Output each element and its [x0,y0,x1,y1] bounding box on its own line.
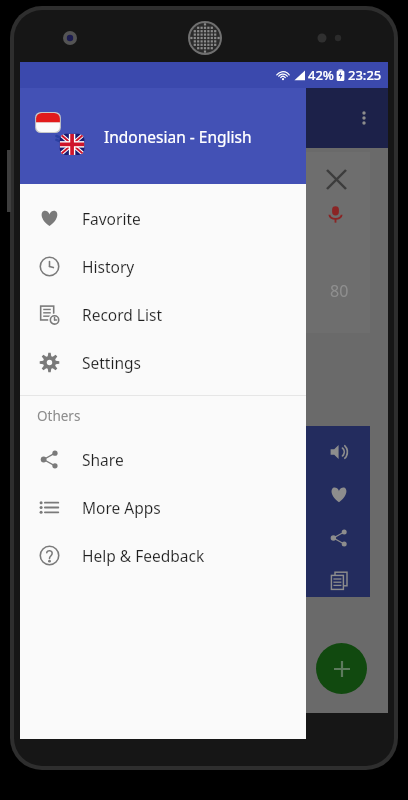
staticText: 23:25 [348,66,382,84]
button[interactable]: Settings [20,338,306,386]
staticText: 42% [308,66,334,84]
button[interactable]: Copy [323,565,355,597]
button[interactable]: Clear [321,164,351,194]
button[interactable]: Help & Feedback [20,531,306,579]
button[interactable]: Share [20,435,306,483]
staticText: Settings [82,352,141,373]
button[interactable]: Voice input [321,200,349,228]
button[interactable]: Favorite [323,479,355,511]
button[interactable]: Speak [323,436,355,468]
button[interactable]: History [20,242,306,290]
button[interactable]: Share [323,522,355,554]
staticText: Others [37,407,81,425]
staticText: More Apps [82,497,161,518]
staticText: 80 [330,280,349,302]
staticText: History [82,256,135,277]
staticText: Favorite [82,208,141,229]
staticText: Record List [82,304,162,325]
button[interactable]: More options [346,100,382,136]
button[interactable]: Indonesian - English [20,88,306,184]
staticText: Share [82,449,124,470]
staticText: Help & Feedback [82,545,205,566]
button[interactable]: Favorite [20,194,306,242]
button[interactable]: Record List [20,290,306,338]
button[interactable]: More Apps [20,483,306,531]
staticText: Indonesian - English [104,126,252,147]
button[interactable]: Add [316,643,367,694]
